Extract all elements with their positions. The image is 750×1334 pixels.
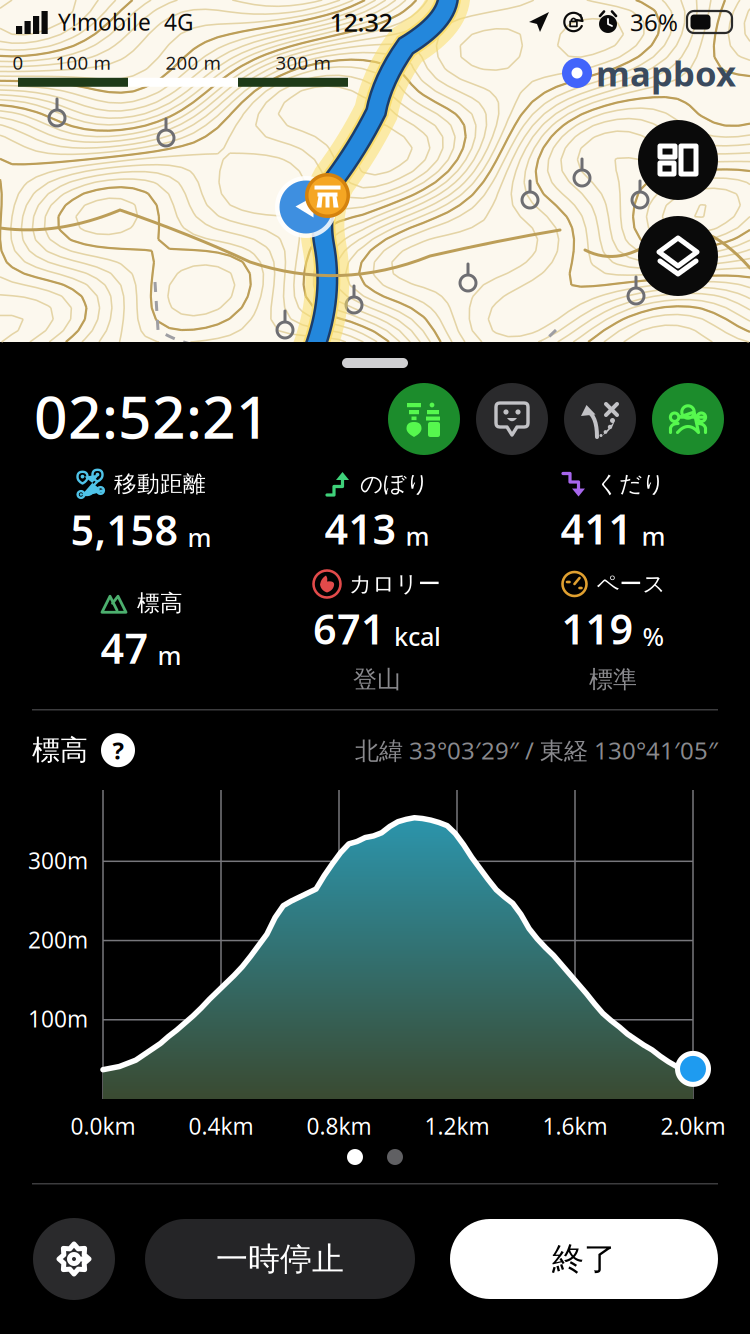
staticText: m [187, 520, 211, 554]
button[interactable]: Group members [652, 383, 724, 455]
staticText: 1.2km [424, 1111, 489, 1141]
staticText: 4G [164, 7, 194, 37]
staticText: 300 m [275, 50, 330, 75]
staticText: m [641, 519, 665, 553]
staticText: 36% [630, 6, 678, 38]
staticText: ? [112, 734, 123, 766]
button[interactable]: Settings [33, 1218, 115, 1300]
button[interactable]: 終了 [450, 1219, 718, 1299]
staticText: 119 [561, 601, 633, 656]
staticText: m [405, 519, 429, 553]
staticText: 100 m [55, 50, 110, 75]
staticText: 移動距離 [114, 470, 206, 498]
staticText: 登山 [353, 665, 401, 694]
staticText: 671 [313, 601, 385, 656]
staticText: 北緯 33°03′29″ / 東経 130°41′05″ [355, 734, 718, 766]
staticText: 02:52:21 [34, 377, 270, 455]
button[interactable]: Map layers [638, 216, 718, 296]
staticText: 0.0km [70, 1111, 135, 1141]
button[interactable]: Collapse map [638, 120, 718, 200]
button[interactable]: Share my location [388, 383, 460, 455]
staticText: 2.0km [660, 1111, 725, 1141]
staticText: 5,158 [70, 502, 178, 557]
staticText: 300m [28, 845, 88, 875]
staticText: 47 [100, 620, 148, 675]
staticText: 100m [28, 1004, 88, 1034]
staticText: % [642, 619, 664, 653]
button[interactable]: Route deviation alert [564, 383, 636, 455]
staticText: 0.4km [188, 1111, 253, 1141]
staticText: くだり [596, 470, 665, 498]
staticText: ペース [596, 570, 665, 598]
button[interactable]: 一時停止 [145, 1219, 415, 1299]
staticText: 0 [12, 50, 23, 75]
staticText: 411 [560, 501, 632, 556]
staticText: 標高 [137, 589, 183, 617]
staticText: Y!mobile [58, 7, 151, 37]
staticText: m [157, 638, 181, 672]
staticText: 標高 [32, 733, 88, 767]
staticText: 標準 [589, 665, 637, 694]
staticText: カロリー [349, 570, 441, 598]
button[interactable]: Post a moment [476, 383, 548, 455]
staticText: 200 m [165, 50, 220, 75]
staticText: 200m [28, 924, 88, 955]
staticText: 12:32 [329, 5, 392, 39]
staticText: 1.6km [542, 1111, 607, 1141]
staticText: kcal [394, 619, 441, 653]
staticText: のぼり [360, 470, 429, 498]
staticText: mapbox [596, 50, 736, 96]
staticText: 一時停止 [216, 1239, 344, 1279]
button[interactable]: About elevation [101, 733, 135, 767]
staticText: 0.8km [306, 1111, 371, 1141]
staticText: 終了 [552, 1239, 616, 1279]
staticText: 413 [324, 501, 396, 556]
